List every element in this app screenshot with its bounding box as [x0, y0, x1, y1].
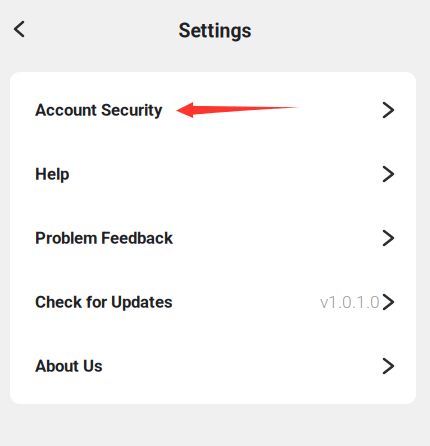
button[interactable]: Problem Feedback [10, 206, 416, 270]
button[interactable]: Back [4, 11, 34, 47]
staticText: Settings [178, 20, 251, 42]
staticText: Problem Feedback [35, 228, 173, 248]
staticText: Check for Updates [35, 292, 173, 312]
staticText: About Us [35, 356, 103, 376]
staticText: Account Security [35, 100, 162, 120]
button[interactable]: About Us [10, 334, 416, 398]
button[interactable]: Check for Updates [10, 270, 416, 334]
button[interactable]: Account Security [10, 78, 416, 142]
staticText: v1.0.1.0 [320, 292, 380, 312]
button[interactable]: Help [10, 142, 416, 206]
staticText: Help [35, 164, 69, 184]
